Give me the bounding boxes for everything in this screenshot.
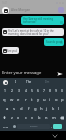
- button[interactable]: u: [41, 95, 47, 104]
- staticText: e: [17, 97, 20, 103]
- button[interactable]: .: [50, 124, 53, 129]
- button[interactable]: r: [22, 95, 29, 104]
- staticText: j: [46, 106, 48, 112]
- staticText: t: [31, 97, 33, 103]
- staticText: n: [45, 115, 48, 120]
- button[interactable]: Backspace: [57, 113, 66, 122]
- staticText: Hey! Are we still meeting tomorrow?: [23, 17, 59, 23]
- staticText: f: [28, 106, 30, 112]
- staticText: d: [20, 106, 23, 112]
- button[interactable]: k: [50, 104, 56, 113]
- button[interactable]: Sounds good: [44, 38, 64, 46]
- button[interactable]: v: [29, 113, 36, 122]
- staticText: a: [6, 106, 9, 112]
- staticText: x: [17, 115, 20, 120]
- button[interactable]: l: [56, 104, 62, 113]
- staticText: See you!: [7, 49, 18, 53]
- staticText: English: [30, 125, 38, 128]
- staticText: Sounds good: [46, 40, 63, 44]
- staticText: 1: [4, 88, 6, 93]
- button[interactable]: 2: [8, 86, 15, 95]
- staticText: y: [37, 97, 40, 103]
- staticText: .: [51, 124, 52, 129]
- staticText: o: [55, 97, 58, 103]
- button[interactable]: f: [25, 104, 32, 113]
- staticText: 7: [43, 88, 45, 93]
- staticText: 3: [18, 88, 20, 93]
- staticText: u: [43, 97, 46, 103]
- staticText: 5: [31, 88, 33, 93]
- staticText: w: [10, 97, 14, 103]
- staticText: v: [31, 115, 34, 120]
- button[interactable]: 3: [15, 86, 22, 95]
- button[interactable]: Emoji: [11, 124, 17, 129]
- button[interactable]: 7: [41, 86, 47, 95]
- staticText: g: [34, 106, 37, 112]
- button[interactable]: d: [18, 104, 25, 113]
- button[interactable]: Assistant: [3, 80, 8, 85]
- button[interactable]: Space: [17, 124, 50, 129]
- staticText: b: [38, 115, 41, 120]
- button[interactable]: y: [35, 95, 41, 104]
- staticText: 8: [49, 88, 51, 93]
- staticText: 9: [55, 88, 57, 93]
- staticText: I'm: [45, 80, 50, 84]
- button[interactable]: Send: [56, 70, 63, 77]
- staticText: z: [11, 115, 13, 120]
- button[interactable]: s: [11, 104, 18, 113]
- staticText: I: [15, 80, 17, 84]
- button[interactable]: h: [38, 104, 44, 113]
- button[interactable]: 5: [29, 86, 35, 95]
- button[interactable]: w: [8, 95, 15, 104]
- staticText: 4: [25, 88, 27, 93]
- button[interactable]: n: [43, 113, 50, 122]
- button[interactable]: Enter: [53, 124, 62, 129]
- button[interactable]: j: [44, 104, 50, 113]
- button[interactable]: a: [4, 104, 11, 113]
- staticText: ?123: [3, 125, 9, 128]
- button[interactable]: x: [15, 113, 22, 122]
- staticText: r: [25, 97, 27, 103]
- button[interactable]: z: [9, 113, 15, 122]
- staticText: h: [40, 106, 43, 112]
- button[interactable]: ?123: [1, 124, 11, 129]
- staticText: 6: [37, 88, 39, 93]
- button[interactable]: Yes! Let's meet at the cafe at 10 in the…: [2, 28, 64, 36]
- button[interactable]: g: [32, 104, 38, 113]
- staticText: p: [61, 97, 64, 103]
- button[interactable]: Contact avatar: [2, 7, 9, 14]
- button[interactable]: t: [29, 95, 35, 104]
- staticText: The: [26, 80, 32, 84]
- button[interactable]: Hide keyboard: [52, 133, 58, 139]
- button[interactable]: e: [15, 95, 22, 104]
- button[interactable]: p: [59, 95, 65, 104]
- staticText: 0: [61, 88, 63, 93]
- button[interactable]: More options: [58, 7, 64, 13]
- button[interactable]: q: [1, 95, 8, 104]
- staticText: s: [13, 106, 16, 112]
- button[interactable]: 6: [35, 86, 41, 95]
- staticText: c: [25, 115, 27, 120]
- staticText: l: [58, 106, 60, 112]
- staticText: Enter your message: [2, 70, 42, 76]
- button[interactable]: 8: [47, 86, 53, 95]
- button[interactable]: o: [53, 95, 59, 104]
- staticText: 2: [11, 88, 13, 93]
- button[interactable]: Hey! Are we still meeting tomorrow?: [21, 16, 64, 25]
- staticText: Alex Morgan: [11, 8, 31, 12]
- staticText: k: [52, 106, 55, 112]
- button[interactable]: 9: [53, 86, 59, 95]
- staticText: m: [52, 115, 56, 120]
- button[interactable]: 4: [22, 86, 29, 95]
- button[interactable]: b: [36, 113, 43, 122]
- button[interactable]: 1: [1, 86, 8, 95]
- button[interactable]: i: [47, 95, 53, 104]
- button[interactable]: See you!: [2, 47, 19, 54]
- button[interactable]: 0: [59, 86, 65, 95]
- button[interactable]: m: [50, 113, 57, 122]
- staticText: Yes! Let's meet at the cafe at 10 in the…: [8, 29, 63, 35]
- button[interactable]: c: [22, 113, 29, 122]
- button[interactable]: Shift: [0, 113, 9, 122]
- staticText: q: [3, 97, 6, 103]
